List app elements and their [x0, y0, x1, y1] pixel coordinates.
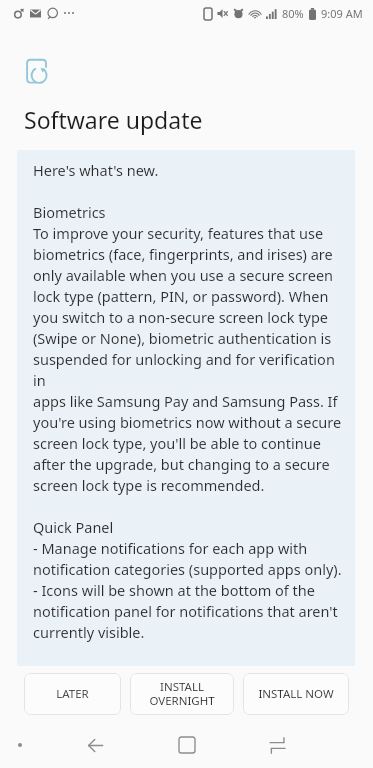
staticText: LATER: [56, 686, 89, 702]
button[interactable]: INSTALL OVERNIGHT: [130, 673, 234, 715]
button[interactable]: LATER: [24, 673, 121, 715]
staticText: Here's what's new. Biometrics To improve…: [33, 160, 351, 666]
staticText: INSTALL OVERNIGHT: [149, 679, 215, 709]
button[interactable]: Recent apps: [232, 722, 323, 768]
staticText: 80%: [282, 6, 304, 21]
button[interactable]: Back: [50, 722, 141, 768]
staticText: Software update: [24, 104, 203, 135]
staticText: 9:09 AM: [321, 6, 363, 21]
button[interactable]: INSTALL NOW: [243, 673, 349, 715]
button[interactable]: Home: [141, 722, 232, 768]
staticText: INSTALL NOW: [258, 686, 334, 702]
